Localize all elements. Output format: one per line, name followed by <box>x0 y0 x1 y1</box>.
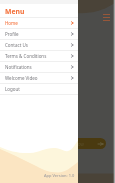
staticText: Profile <box>5 31 70 37</box>
staticText: App Version: 1.0 <box>44 173 75 178</box>
staticText: Terms & Conditions <box>5 53 70 59</box>
button[interactable]: Notifications <box>0 62 78 72</box>
staticText: Logout <box>5 86 78 92</box>
button[interactable]: Logout <box>0 84 78 94</box>
staticText: Home <box>5 20 70 26</box>
button[interactable]: Home <box>0 18 78 28</box>
button[interactable]: Profile <box>0 29 78 39</box>
button[interactable]: Open navigation menu <box>103 14 110 21</box>
staticText: Notifications <box>5 64 70 70</box>
button[interactable]: Book Now <box>50 138 106 149</box>
staticText: Welcome Video <box>5 75 70 81</box>
button[interactable]: Contact Us <box>0 40 78 50</box>
staticText: Menu <box>5 7 25 16</box>
button[interactable]: Welcome Video <box>0 73 78 83</box>
button[interactable]: Terms & Conditions <box>0 51 78 61</box>
staticText: Contact Us <box>5 42 70 48</box>
staticText: Book Now <box>62 141 84 147</box>
